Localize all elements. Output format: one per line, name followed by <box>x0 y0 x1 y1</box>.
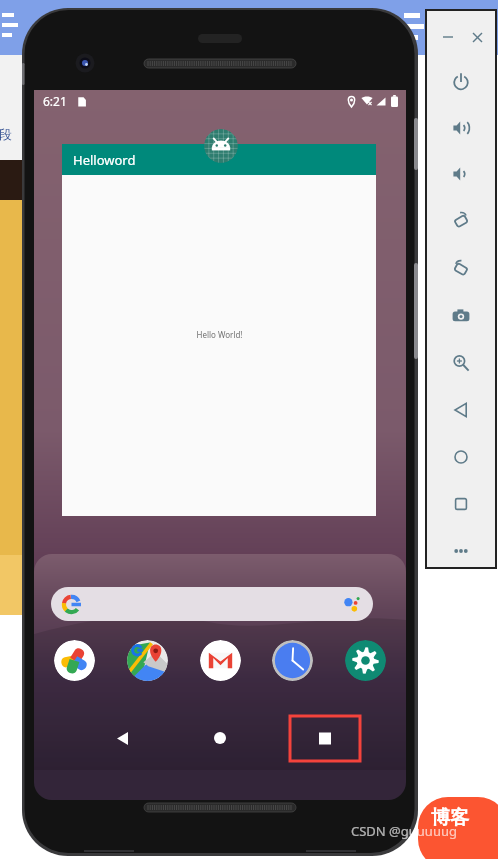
button[interactable]: Minimize <box>439 28 457 46</box>
button[interactable]: Rotate left <box>447 207 475 235</box>
button[interactable]: More <box>447 537 475 565</box>
button[interactable]: Zoom <box>447 349 475 377</box>
button[interactable]: Photos <box>54 640 95 681</box>
button[interactable]: Helloword <box>62 144 376 516</box>
button[interactable]: Back <box>102 718 142 758</box>
button[interactable]: Volume up <box>447 114 475 142</box>
button[interactable]: Helloword app icon <box>204 129 238 163</box>
button[interactable]: Gmail <box>200 640 241 681</box>
button[interactable]: Recent apps <box>290 716 360 761</box>
staticText: Hello World! <box>196 329 243 340</box>
staticText: 段 <box>0 126 12 142</box>
staticText: 6:21 <box>43 93 67 109</box>
button[interactable]: Clock <box>272 640 313 681</box>
staticText: Helloword <box>73 151 136 169</box>
button[interactable]: Settings <box>345 640 386 681</box>
button[interactable]: Search <box>51 587 373 621</box>
staticText: CSDN @guuuuug <box>351 822 457 840</box>
button[interactable]: Home <box>447 443 475 471</box>
button[interactable]: Maps <box>127 640 168 681</box>
button[interactable]: Overview <box>447 490 475 518</box>
staticText: 博客 <box>431 806 469 830</box>
button[interactable]: Rotate right <box>447 255 475 283</box>
button[interactable]: Close <box>468 28 486 46</box>
button[interactable]: Power <box>447 67 475 95</box>
button[interactable]: Home <box>200 718 240 758</box>
button[interactable]: Take screenshot <box>447 302 475 330</box>
button[interactable]: Back <box>447 396 475 424</box>
button[interactable]: Volume down <box>447 160 475 188</box>
